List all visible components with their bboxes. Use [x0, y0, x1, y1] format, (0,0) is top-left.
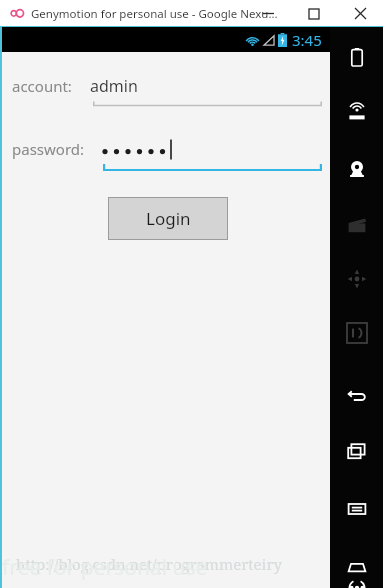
button[interactable]: Back [340, 376, 374, 410]
button[interactable]: Camera [340, 152, 374, 186]
staticText: Login [146, 207, 191, 230]
staticText: http://blog.csdn.net/programmerteiry [16, 554, 282, 574]
button[interactable]: Rotate [340, 262, 374, 296]
button[interactable]: GPS [340, 96, 374, 130]
button[interactable]: Recents [340, 434, 374, 468]
button[interactable]: Identifiers [340, 316, 374, 350]
button[interactable]: Battery [340, 40, 374, 74]
staticText: password: [12, 139, 85, 159]
staticText: 3:45 [292, 30, 322, 50]
staticText: free for personal use [2, 553, 208, 582]
button[interactable]: Maximize [291, 0, 337, 27]
staticText: Genymotion for personal use - Google Nex… [31, 6, 278, 22]
staticText: account: [12, 76, 72, 96]
button[interactable]: Home [340, 550, 374, 584]
button[interactable] [91, 133, 322, 165]
button[interactable]: Close [337, 0, 383, 27]
button[interactable]: Menu [340, 492, 374, 526]
staticText: admin [90, 75, 138, 97]
button[interactable]: Minimize [245, 0, 291, 27]
button[interactable]: Login [108, 197, 228, 240]
button[interactable]: admin [84, 70, 322, 102]
button[interactable]: Screen record [340, 208, 374, 242]
